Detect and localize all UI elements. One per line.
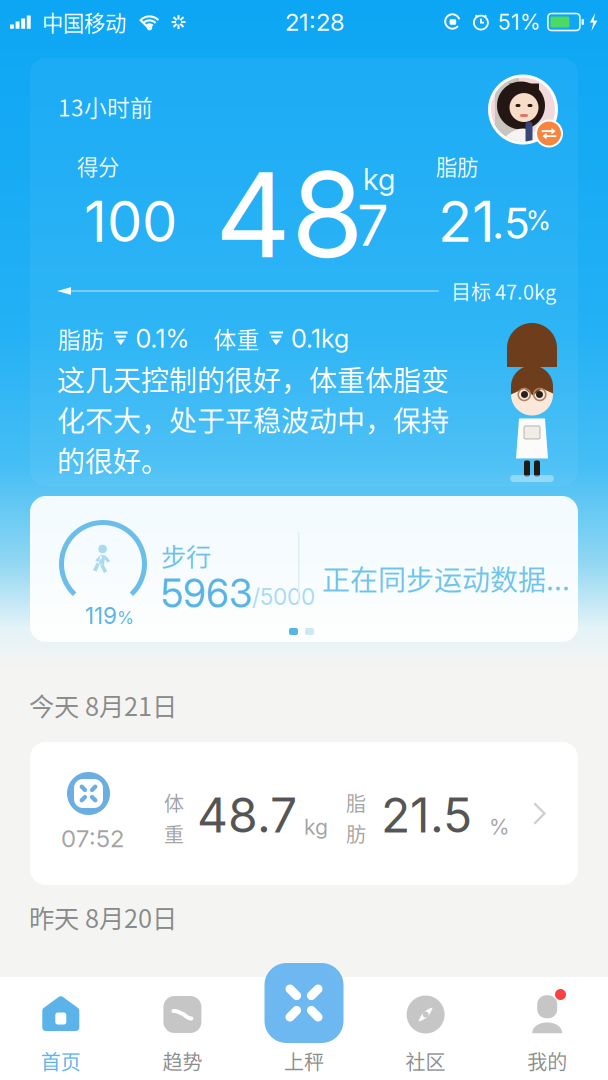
staticText: 这几天控制的很好，体重体脂变化不大，处于平稳波动中，保持的很好。 bbox=[57, 358, 449, 480]
button[interactable]: 07:52 bbox=[0, 742, 608, 885]
button[interactable]: 我的 bbox=[486, 977, 608, 1080]
button[interactable]: 上秤 bbox=[264, 963, 343, 1043]
staticText: 119 bbox=[85, 602, 117, 629]
button[interactable]: 社区 bbox=[365, 977, 486, 1080]
button[interactable]: 119 bbox=[0, 496, 608, 642]
staticText: 得分 bbox=[77, 150, 119, 181]
staticText: 脂 bbox=[346, 788, 366, 817]
staticText: 我的 bbox=[527, 1046, 567, 1075]
staticText: 重 bbox=[164, 819, 184, 848]
staticText: 0.1kg bbox=[291, 323, 349, 354]
button[interactable]: 首页 bbox=[0, 977, 122, 1080]
staticText: 脂肪 bbox=[58, 322, 104, 355]
staticText: 中国移动 bbox=[42, 7, 126, 37]
staticText: 今天 8月21日 bbox=[29, 687, 177, 723]
staticText: 0.1% bbox=[135, 323, 189, 354]
staticText: 体 bbox=[164, 788, 184, 817]
staticText: kg bbox=[363, 161, 395, 197]
staticText: 正在同步运动数据... bbox=[322, 558, 570, 598]
staticText: 07:52 bbox=[61, 824, 124, 853]
staticText: 肪 bbox=[346, 819, 366, 848]
staticText: kg bbox=[304, 814, 328, 840]
staticText: 昨天 8月20日 bbox=[29, 899, 177, 935]
staticText: .7 bbox=[342, 191, 389, 259]
staticText: 上秤 bbox=[284, 1046, 324, 1075]
staticText: 目标 47.0kg bbox=[451, 276, 556, 305]
staticText: /5000 bbox=[252, 583, 315, 610]
button[interactable]: 切换用户 bbox=[480, 66, 566, 152]
staticText: % bbox=[489, 814, 510, 840]
staticText: 体重 bbox=[213, 322, 259, 355]
staticText: 脂肪 bbox=[436, 150, 478, 181]
staticText: 100 bbox=[84, 187, 177, 255]
staticText: 51% bbox=[498, 9, 541, 35]
button[interactable]: 趋势 bbox=[122, 977, 243, 1080]
button[interactable]: 上秤 bbox=[243, 977, 365, 1080]
staticText: % bbox=[117, 607, 134, 628]
staticText: .5 bbox=[492, 197, 530, 249]
staticText: 21 bbox=[438, 187, 495, 255]
staticText: 步行 bbox=[161, 537, 211, 574]
staticText: 5963 bbox=[161, 570, 252, 617]
staticText: 首页 bbox=[41, 1046, 81, 1075]
staticText: % bbox=[526, 204, 551, 237]
staticText: 21.5 bbox=[381, 786, 472, 844]
staticText: 48.7 bbox=[197, 786, 297, 844]
staticText: 趋势 bbox=[162, 1046, 202, 1075]
staticText: 13小时前 bbox=[58, 90, 153, 123]
staticText: 48 bbox=[215, 143, 364, 285]
staticText: 21:28 bbox=[285, 7, 345, 36]
staticText: 社区 bbox=[406, 1046, 446, 1075]
